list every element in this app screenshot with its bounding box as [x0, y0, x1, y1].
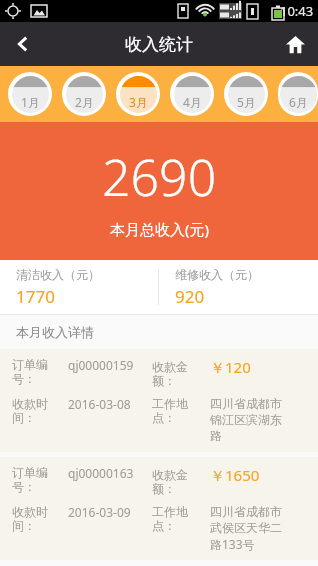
button[interactable]: 1月: [8, 72, 52, 116]
staticText: 本月收入详情: [16, 324, 94, 340]
staticText: 清洁收入（元）: [16, 267, 100, 282]
button[interactable]: 4月: [170, 72, 214, 116]
staticText: 收入统计: [125, 34, 193, 55]
staticText: ￥1650: [210, 465, 260, 485]
staticText: 10:43: [280, 2, 314, 20]
staticText: 2016-03-09: [68, 504, 152, 520]
staticText: 收款时间：: [12, 396, 68, 426]
staticText: 收款时间：: [12, 504, 68, 534]
staticText: 920: [175, 285, 205, 308]
staticText: 2690: [102, 143, 217, 211]
staticText: 1月: [12, 94, 49, 110]
button[interactable]: 5月: [224, 72, 268, 116]
staticText: 四川省成都市锦江区滨湖东路: [210, 396, 286, 444]
staticText: 2月: [66, 94, 103, 110]
staticText: 收款金额：: [152, 467, 210, 497]
staticText: qj00000159: [68, 357, 152, 373]
staticText: ￥120: [210, 357, 251, 377]
staticText: qj00000163: [68, 465, 152, 481]
staticText: 四川省成都市武侯区天华二路133号: [210, 504, 286, 552]
button[interactable]: 订单编号：: [0, 349, 318, 452]
staticText: 收款金额：: [152, 359, 210, 389]
staticText: 维修收入（元）: [175, 267, 259, 282]
staticText: 5月: [228, 94, 265, 110]
staticText: 本月总收入(元): [110, 219, 210, 239]
staticText: 4月: [174, 94, 211, 110]
staticText: 3月: [120, 94, 157, 110]
button[interactable]: Home: [272, 22, 318, 66]
staticText: 订单编号：: [12, 357, 68, 387]
staticText: 2016-03-08: [68, 396, 152, 412]
staticText: 6月: [280, 94, 317, 110]
button[interactable]: 订单编号：: [0, 457, 318, 560]
button[interactable]: Back: [0, 22, 46, 66]
button[interactable]: 3月: [116, 72, 160, 116]
staticText: 工作地点：: [152, 504, 210, 534]
staticText: 订单编号：: [12, 465, 68, 495]
button[interactable]: 6月: [278, 72, 318, 116]
button[interactable]: 2月: [62, 72, 106, 116]
staticText: 1770: [16, 285, 55, 308]
staticText: 工作地点：: [152, 396, 210, 426]
